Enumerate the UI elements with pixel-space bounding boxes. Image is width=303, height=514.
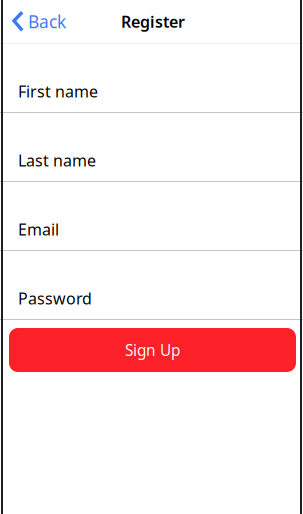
staticText: Sign Up [125, 339, 180, 360]
staticText: First name [18, 81, 98, 102]
button[interactable]: Sign Up [9, 328, 296, 372]
staticText: Password [18, 288, 92, 309]
staticText: Register [121, 11, 185, 32]
button[interactable]: Password [0, 251, 303, 319]
staticText: Last name [18, 150, 96, 171]
button[interactable]: First name [0, 44, 303, 112]
button[interactable]: Last name [0, 113, 303, 181]
button[interactable]: Email [0, 182, 303, 250]
staticText: Back [28, 10, 66, 33]
button[interactable]: Back [0, 5, 74, 38]
staticText: Email [18, 219, 59, 240]
